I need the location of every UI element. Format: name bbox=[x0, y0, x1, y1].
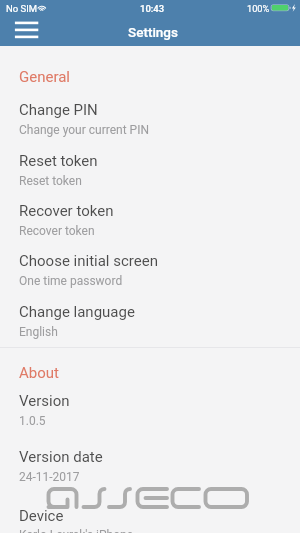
staticText: Change your current PIN bbox=[19, 123, 149, 137]
staticText: Recover token bbox=[19, 224, 95, 238]
button[interactable] bbox=[0, 191, 300, 235]
staticText: One time password bbox=[19, 274, 123, 288]
staticText: Change language bbox=[19, 303, 135, 321]
staticText: Karlo Lovrek's iPhone bbox=[19, 528, 134, 533]
staticText: English bbox=[19, 325, 58, 339]
staticText: About bbox=[19, 364, 59, 382]
button[interactable] bbox=[0, 437, 300, 481]
button[interactable] bbox=[0, 381, 300, 425]
staticText: 10:43 bbox=[140, 3, 165, 14]
staticText: Reset token bbox=[19, 174, 82, 188]
staticText: Reset token bbox=[19, 152, 98, 170]
button[interactable] bbox=[0, 496, 300, 533]
staticText: 100% bbox=[247, 3, 270, 14]
staticText: Device bbox=[19, 507, 64, 525]
button[interactable] bbox=[0, 292, 300, 336]
staticText: Recover token bbox=[19, 202, 114, 220]
button[interactable]: Open navigation menu bbox=[6, 17, 44, 46]
button[interactable] bbox=[0, 241, 300, 285]
button[interactable] bbox=[0, 90, 300, 134]
staticText: Change PIN bbox=[19, 101, 98, 119]
staticText: 24-11-2017 bbox=[19, 470, 80, 484]
staticText: Choose initial screen bbox=[19, 252, 158, 270]
staticText: Settings bbox=[128, 24, 178, 40]
staticText: General bbox=[19, 68, 71, 86]
staticText: Version date bbox=[19, 448, 103, 466]
staticText: Version bbox=[19, 392, 70, 410]
staticText: 1.0.5 bbox=[19, 414, 46, 428]
button[interactable] bbox=[0, 141, 300, 185]
staticText: No SIM bbox=[6, 3, 38, 14]
